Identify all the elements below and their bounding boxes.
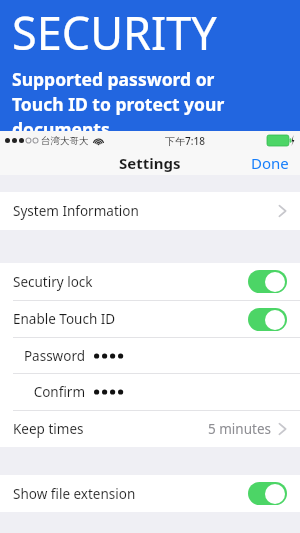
staticText: 下午7:18 bbox=[165, 134, 205, 148]
button[interactable]: System Information bbox=[0, 192, 300, 230]
button[interactable]: Keep times bbox=[0, 411, 300, 447]
button[interactable]: Toggle on bbox=[248, 270, 287, 293]
staticText: Settings bbox=[119, 153, 181, 173]
staticText: Confirm bbox=[33, 383, 85, 401]
button[interactable]: Toggle on bbox=[248, 308, 287, 331]
staticText: Enable Touch ID bbox=[13, 310, 116, 328]
staticText: SECURITY bbox=[12, 2, 217, 63]
staticText: 台湾大哥大 bbox=[41, 135, 89, 147]
staticText: Done bbox=[251, 153, 289, 173]
button[interactable]: Show file extension bbox=[0, 475, 300, 512]
staticText: 5 minutes bbox=[208, 420, 271, 438]
button[interactable]: Secutiry lock bbox=[0, 263, 300, 300]
button[interactable]: Enable Touch ID bbox=[0, 301, 300, 337]
staticText: Password bbox=[23, 347, 85, 365]
staticText: System Information bbox=[13, 202, 139, 220]
button[interactable]: Confirm bbox=[0, 374, 300, 410]
button[interactable]: Toggle on bbox=[248, 482, 287, 505]
staticText: Secutiry lock bbox=[13, 273, 93, 291]
staticText: Show file extension bbox=[13, 485, 136, 503]
button[interactable]: Done bbox=[240, 150, 300, 175]
staticText: Supported password or Touch ID to protec… bbox=[12, 67, 225, 131]
button[interactable]: Password bbox=[0, 338, 300, 373]
staticText: Keep times bbox=[13, 420, 84, 438]
